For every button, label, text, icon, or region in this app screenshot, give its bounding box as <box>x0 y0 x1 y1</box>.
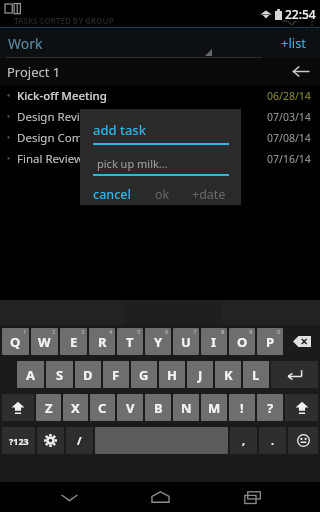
button[interactable]: R <box>89 328 115 355</box>
button[interactable]: Work <box>0 28 268 58</box>
button[interactable]: A <box>17 361 44 388</box>
staticText: Z <box>45 399 53 417</box>
button[interactable]: Enter <box>271 361 318 388</box>
staticText: TASKS SORTED BY GROUP <box>14 15 114 26</box>
button[interactable]: B <box>145 394 171 421</box>
staticText: N <box>181 399 192 417</box>
button[interactable]: Hide keyboard <box>46 482 92 512</box>
button[interactable]: ok <box>155 186 170 203</box>
button[interactable]: Design Review <box>0 106 320 127</box>
staticText: J <box>198 366 203 384</box>
button[interactable]: O <box>229 328 255 355</box>
button[interactable]: Shift <box>2 394 34 421</box>
staticText: C <box>98 399 107 417</box>
staticText: L <box>252 366 260 384</box>
button[interactable]: W <box>31 328 58 355</box>
button[interactable]: ! <box>229 394 255 421</box>
button[interactable]: / <box>66 427 93 454</box>
staticText: 5 <box>137 328 141 336</box>
staticText: A <box>26 366 35 384</box>
button[interactable]: E <box>60 328 87 355</box>
button[interactable]: M <box>201 394 227 421</box>
button[interactable]: Settings <box>37 427 64 454</box>
button[interactable]: I <box>201 328 227 355</box>
button[interactable]: J <box>187 361 213 388</box>
staticText: Y <box>154 333 163 351</box>
button[interactable]: U <box>173 328 199 355</box>
button[interactable]: G <box>131 361 157 388</box>
staticText: ok <box>155 186 170 203</box>
button[interactable]: , <box>230 427 257 454</box>
button[interactable]: P <box>257 328 283 355</box>
staticText: 8 <box>221 328 225 336</box>
staticText: Design Complete <box>17 130 267 146</box>
button[interactable]: D <box>75 361 101 388</box>
staticText: E <box>70 333 78 351</box>
staticText: 07/08/14 <box>267 131 311 145</box>
staticText: pick up milk... <box>97 156 168 171</box>
button[interactable]: K <box>215 361 241 388</box>
button[interactable]: Emoji <box>288 427 318 454</box>
staticText: 22:54 <box>285 6 316 22</box>
staticText: U <box>181 333 191 351</box>
button[interactable]: Recents <box>229 482 275 512</box>
staticText: 0 <box>277 328 281 336</box>
staticText: 3 <box>81 328 85 336</box>
button[interactable]: ? <box>257 394 283 421</box>
staticText: M <box>208 399 221 417</box>
staticText: / <box>77 433 82 448</box>
button[interactable]: C <box>90 394 115 421</box>
staticText: Design Review <box>17 109 267 125</box>
button[interactable]: V <box>117 394 143 421</box>
staticText: W <box>38 333 51 351</box>
staticText: V <box>126 399 135 417</box>
staticText: 07/16/14 <box>267 152 311 166</box>
button[interactable]: F <box>103 361 129 388</box>
button[interactable]: +date <box>192 186 226 203</box>
staticText: 6 <box>165 328 169 336</box>
button[interactable]: H <box>159 361 185 388</box>
staticText: 9 <box>249 328 253 336</box>
button[interactable]: Backspace <box>285 328 318 355</box>
staticText: +date <box>192 186 226 203</box>
button[interactable]: Z <box>36 394 61 421</box>
staticText: Work <box>8 34 43 53</box>
staticText: 1 <box>23 328 27 336</box>
staticText: ! <box>240 399 244 417</box>
staticText: ?123 <box>9 435 29 447</box>
staticText: 06/28/14 <box>267 89 311 103</box>
button[interactable]: N <box>173 394 199 421</box>
staticText: add task <box>93 121 146 139</box>
staticText: P <box>266 333 275 351</box>
button[interactable]: Q <box>2 328 29 355</box>
button[interactable]: Design Complete <box>0 127 320 148</box>
button[interactable]: S <box>46 361 73 388</box>
button[interactable]: Home <box>137 482 183 512</box>
staticText: R <box>98 333 107 351</box>
button[interactable]: cancel <box>93 186 131 203</box>
staticText: 7 <box>193 328 197 336</box>
button[interactable]: L <box>243 361 269 388</box>
staticText: S <box>56 366 64 384</box>
staticText: Q <box>10 333 21 351</box>
button[interactable]: . <box>259 427 286 454</box>
staticText: B <box>154 399 163 417</box>
button[interactable]: Back <box>286 58 314 85</box>
button[interactable]: X <box>63 394 88 421</box>
button[interactable]: Kick-off Meeting <box>0 85 320 106</box>
button[interactable]: ?123 <box>2 427 35 454</box>
staticText: ? <box>267 399 274 417</box>
staticText: Project 1 <box>7 63 61 81</box>
staticText: O <box>237 333 248 351</box>
staticText: D <box>83 366 93 384</box>
button[interactable]: +list <box>268 28 320 58</box>
button[interactable]: Shift <box>285 394 318 421</box>
staticText: Kick-off Meeting <box>17 88 267 104</box>
button[interactable]: Final Review <box>0 148 320 169</box>
button[interactable]: Y <box>145 328 171 355</box>
button[interactable]: T <box>117 328 143 355</box>
